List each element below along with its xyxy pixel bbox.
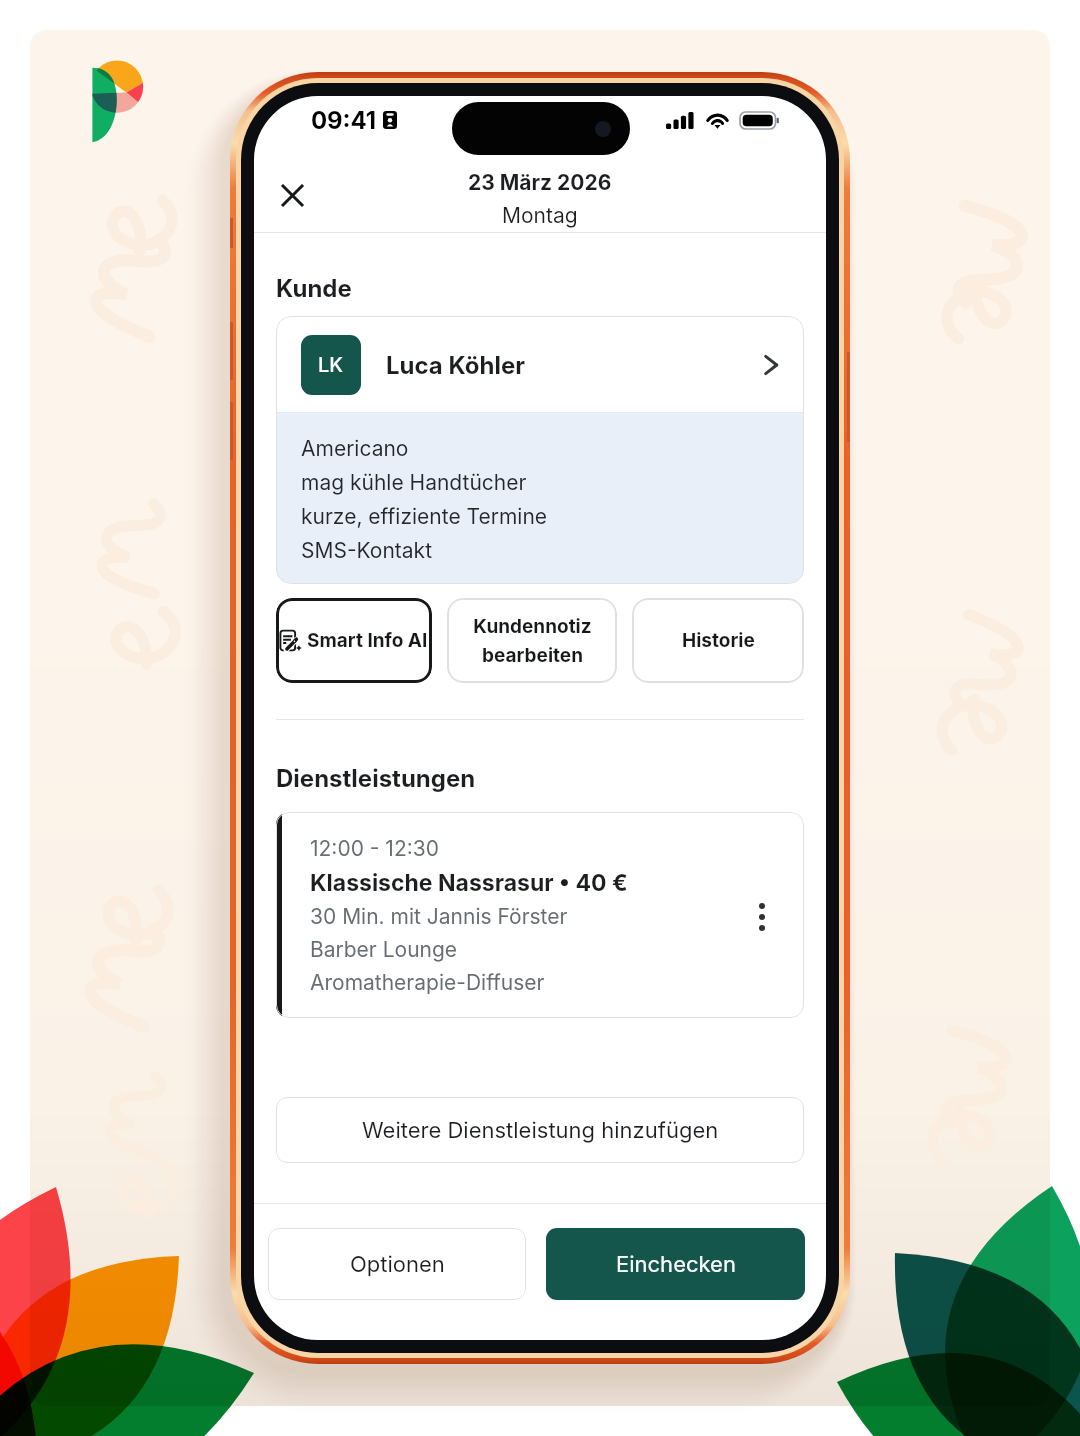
staticText: Aromatherapie-Diffuser (310, 970, 545, 995)
staticText: 12:00 - 12:30 (310, 836, 439, 861)
staticText: kurze, effiziente Termine (301, 504, 548, 529)
button[interactable]: Einchecken (546, 1228, 805, 1300)
staticText: Kundennotiz bearbeiten (473, 615, 592, 667)
staticText: Luca Köhler (386, 351, 758, 380)
staticText: Weitere Dienstleistung hinzufügen (362, 1117, 719, 1144)
staticText: Kunde (276, 274, 352, 303)
staticText: Einchecken (616, 1251, 736, 1278)
staticText: Klassische Nassrasur • 40 € (310, 869, 628, 897)
button[interactable]: Smart Info AI (276, 598, 432, 683)
staticText: 30 Min. mit Jannis Förster (310, 904, 568, 929)
staticText: Montag (502, 203, 578, 228)
staticText: mag kühle Handtücher (301, 470, 527, 495)
button[interactable]: Mehr Optionen (740, 895, 784, 939)
staticText: Optionen (350, 1251, 445, 1278)
staticText: Americano (301, 436, 409, 461)
button[interactable]: Schließen (268, 171, 316, 219)
staticText: LK (318, 353, 344, 377)
button[interactable]: Weitere Dienstleistung hinzufügen (276, 1097, 804, 1163)
staticText: 23 März 2026 (468, 170, 612, 195)
button[interactable]: 12:00 - 12:30 (276, 812, 804, 1018)
staticText: Historie (682, 629, 755, 652)
staticText: 09:41 (311, 106, 376, 135)
button[interactable]: Kundennotiz bearbeiten (447, 598, 617, 683)
staticText: SMS-Kontakt (301, 538, 433, 563)
staticText: Smart Info AI (307, 629, 428, 652)
staticText: Barber Lounge (310, 937, 458, 962)
button[interactable]: Historie (632, 598, 804, 683)
button[interactable]: LK (276, 316, 804, 412)
staticText: Dienstleistungen (276, 764, 476, 793)
button[interactable]: Optionen (268, 1228, 526, 1300)
